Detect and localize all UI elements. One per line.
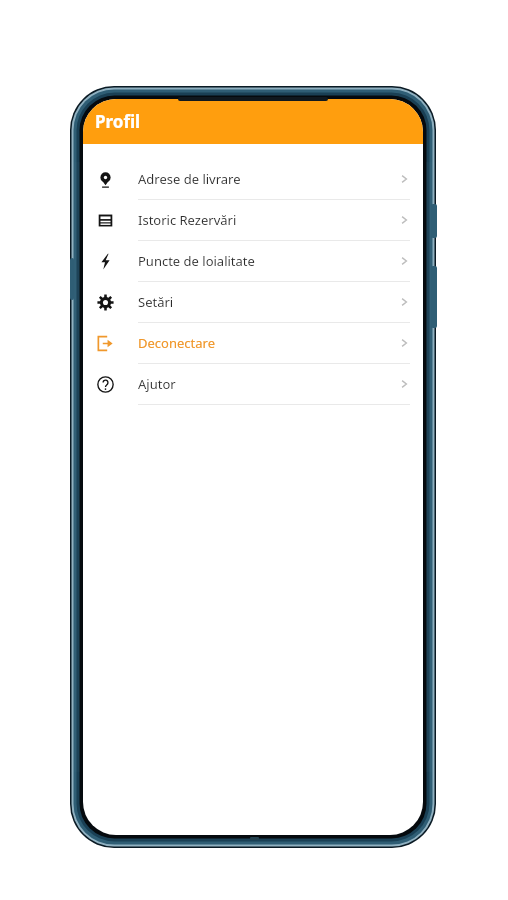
staticText: Profil [95, 110, 141, 133]
button[interactable]: Ajutor [83, 364, 423, 404]
button[interactable]: Deconectare [83, 323, 423, 363]
button[interactable]: Puncte de loialitate [83, 241, 423, 281]
button[interactable]: Adrese de livrare [83, 159, 423, 199]
staticText: Deconectare [138, 334, 215, 352]
staticText: Ajutor [138, 375, 176, 393]
button[interactable]: Istoric Rezervări [83, 200, 423, 240]
staticText: Adrese de livrare [138, 170, 241, 188]
button[interactable]: Setări [83, 282, 423, 322]
staticText: Puncte de loialitate [138, 252, 255, 270]
staticText: Istoric Rezervări [138, 211, 237, 229]
staticText: Setări [138, 293, 174, 311]
